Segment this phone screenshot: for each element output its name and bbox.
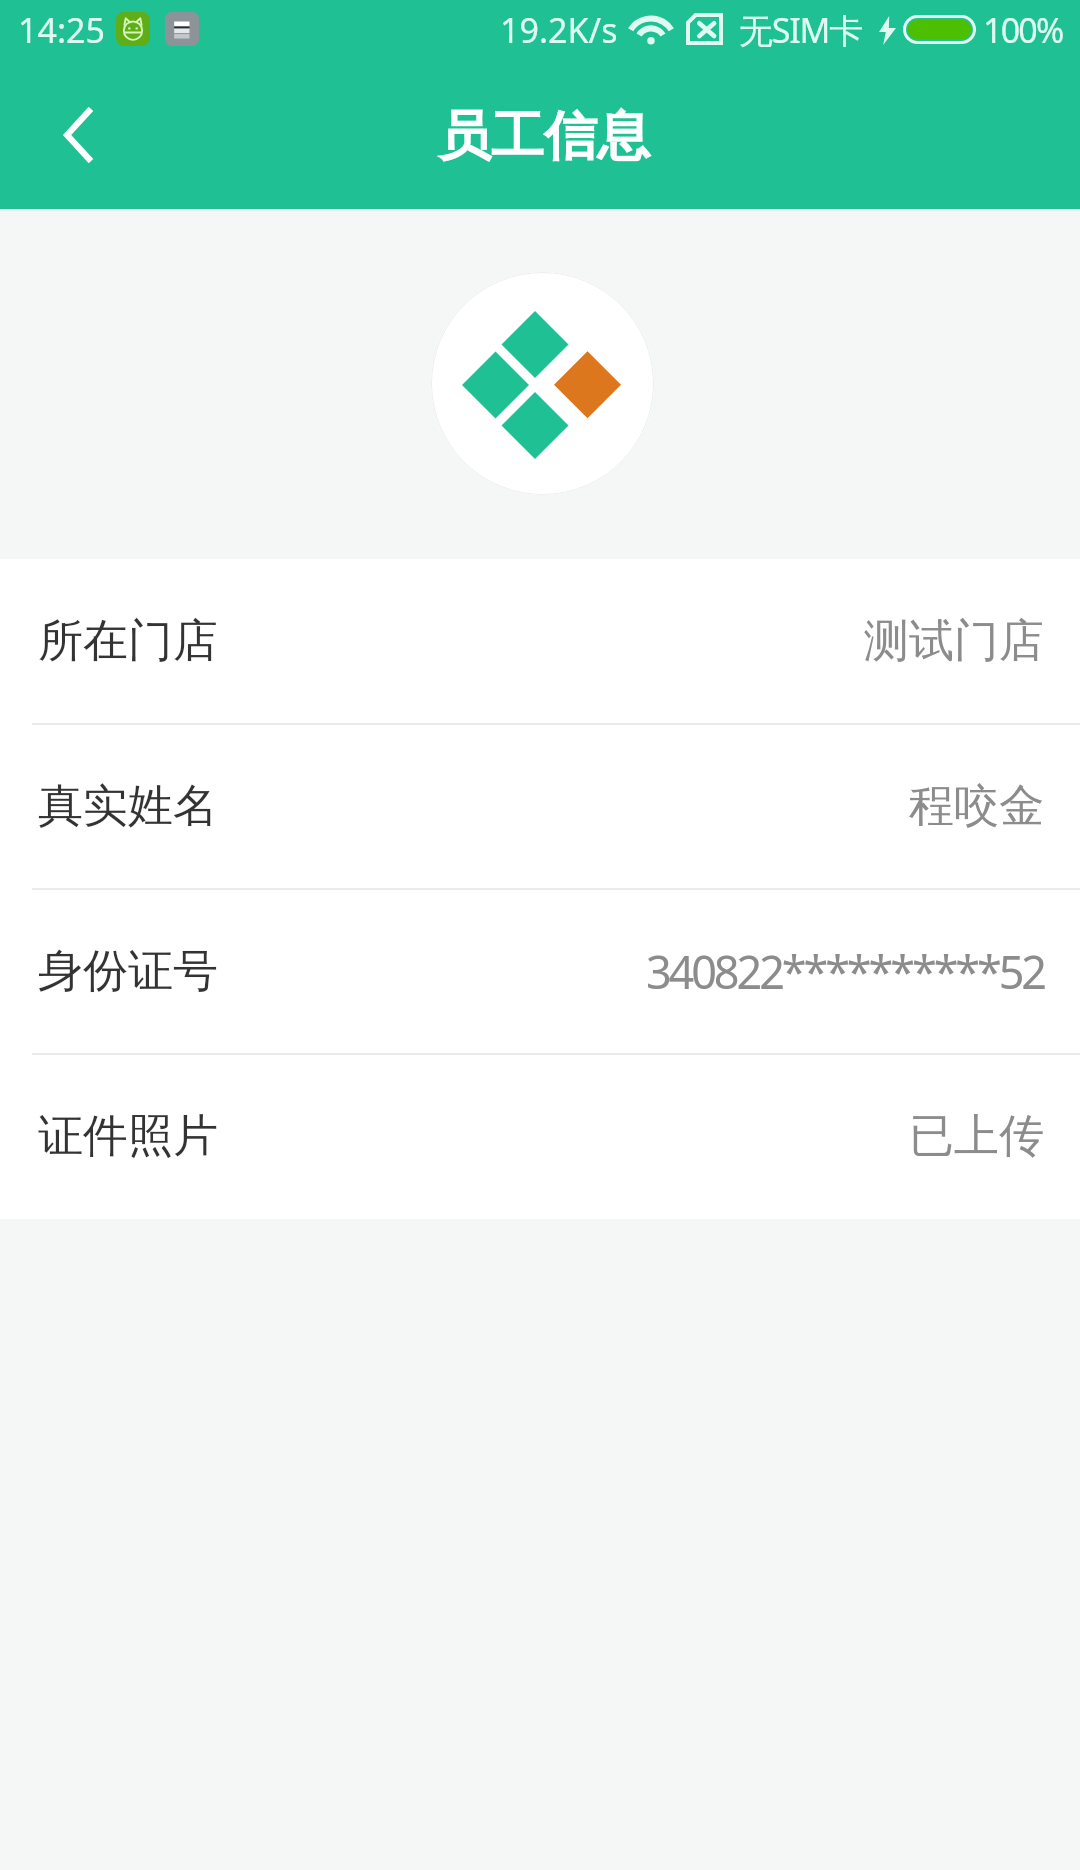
button[interactable]: 所在门店: [0, 559, 1080, 724]
staticText: 已上传: [228, 1108, 1044, 1165]
staticText: 真实姓名: [38, 778, 218, 835]
staticText: 340822**********52: [228, 941, 1044, 1002]
staticText: 14:25: [18, 7, 105, 53]
staticText: 程咬金: [228, 778, 1044, 835]
staticText: 身份证号: [38, 943, 218, 1000]
button[interactable]: 真实姓名: [0, 724, 1080, 889]
staticText: 100%: [983, 7, 1063, 53]
button[interactable]: 证件照片: [0, 1054, 1080, 1219]
staticText: 证件照片: [38, 1108, 218, 1165]
staticText: 测试门店: [228, 613, 1044, 670]
staticText: 19.2K/s: [500, 7, 618, 53]
button[interactable]: Back: [24, 81, 132, 189]
button[interactable]: 身份证号: [0, 889, 1080, 1054]
staticText: 所在门店: [38, 613, 218, 670]
staticText: 无SIM卡: [739, 7, 863, 53]
staticText: 员工信息: [438, 103, 650, 170]
